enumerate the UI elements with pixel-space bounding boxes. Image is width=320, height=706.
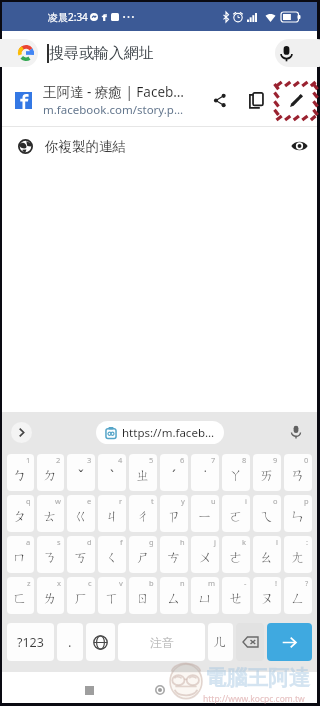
button[interactable]: Recents bbox=[76, 677, 102, 703]
staticText: ㄅ bbox=[13, 467, 28, 485]
button[interactable]: z bbox=[7, 577, 34, 614]
button[interactable]: v bbox=[98, 577, 126, 614]
staticText: ㄘ bbox=[167, 549, 182, 567]
button[interactable]: k bbox=[222, 536, 250, 573]
staticText: q bbox=[26, 496, 31, 506]
button[interactable]: Edit bbox=[275, 75, 317, 126]
button[interactable]: More suggestions bbox=[11, 422, 32, 443]
staticText: 3 bbox=[87, 455, 92, 465]
button[interactable]: https://m.faceb… bbox=[96, 421, 224, 444]
staticText: 9 bbox=[273, 455, 278, 465]
button[interactable]: q bbox=[7, 495, 34, 532]
button[interactable]: g bbox=[129, 536, 157, 573]
staticText: 7 bbox=[211, 455, 216, 465]
staticText: r bbox=[119, 496, 123, 506]
button[interactable]: h bbox=[160, 536, 188, 573]
button[interactable]: n bbox=[160, 577, 188, 614]
button[interactable]: p bbox=[284, 495, 312, 532]
staticText: 5 bbox=[149, 455, 154, 465]
staticText: 0 bbox=[304, 455, 309, 465]
button[interactable]: s bbox=[37, 536, 64, 573]
button[interactable]: j bbox=[191, 536, 219, 573]
staticText: ㄊ bbox=[43, 508, 58, 526]
staticText: https://m.faceb… bbox=[122, 425, 215, 441]
button[interactable]: : bbox=[284, 536, 312, 573]
staticText: e bbox=[87, 496, 92, 506]
staticText: ˋ bbox=[110, 466, 114, 485]
staticText: ㄈ bbox=[13, 590, 28, 608]
button[interactable]: f bbox=[98, 536, 126, 573]
button[interactable]: 8 bbox=[222, 454, 250, 491]
button[interactable]: i bbox=[222, 495, 250, 532]
staticText: a bbox=[26, 537, 31, 547]
staticText: http://www.kocpc.com.tw bbox=[203, 693, 305, 705]
staticText: ˊ bbox=[172, 466, 176, 485]
staticText: s bbox=[57, 537, 61, 547]
button[interactable]: w bbox=[37, 495, 64, 532]
button[interactable]: t bbox=[129, 495, 157, 532]
button[interactable]: 1 bbox=[7, 454, 34, 491]
button[interactable]: d bbox=[67, 536, 95, 573]
staticText: z bbox=[27, 578, 31, 588]
staticText: ㄛ bbox=[229, 508, 244, 526]
button[interactable]: ! bbox=[253, 577, 281, 614]
staticText: b bbox=[149, 578, 154, 588]
button[interactable]: o bbox=[253, 495, 281, 532]
staticText: ㄆ bbox=[13, 508, 28, 526]
staticText: ㄋ bbox=[43, 549, 58, 567]
button[interactable]: ㄦ bbox=[208, 623, 233, 661]
button[interactable]: Go bbox=[267, 623, 312, 661]
button[interactable]: c bbox=[67, 577, 95, 614]
button[interactable]: ? bbox=[284, 577, 312, 614]
button[interactable]: r bbox=[98, 495, 126, 532]
button[interactable]: 3 bbox=[67, 454, 95, 491]
button[interactable]: a bbox=[7, 536, 34, 573]
button[interactable]: 注音 bbox=[118, 623, 205, 661]
staticText: ㄠ bbox=[260, 549, 275, 567]
button[interactable]: u bbox=[191, 495, 219, 532]
button[interactable]: e bbox=[67, 495, 95, 532]
button[interactable]: 你複製的連結 bbox=[2, 127, 317, 165]
staticText: ㄡ bbox=[260, 590, 275, 608]
button[interactable]: y bbox=[160, 495, 188, 532]
button[interactable]: Copy bbox=[238, 75, 275, 126]
button[interactable]: 2 bbox=[37, 454, 64, 491]
staticText: ㄦ bbox=[213, 633, 228, 651]
staticText: j bbox=[214, 537, 216, 547]
button[interactable]: 9 bbox=[253, 454, 281, 491]
button[interactable]: l bbox=[253, 536, 281, 573]
staticText: ㄌ bbox=[43, 590, 58, 608]
button[interactable]: 5 bbox=[129, 454, 157, 491]
staticText: v bbox=[119, 578, 123, 588]
button[interactable]: . bbox=[57, 623, 83, 661]
button[interactable]: 6 bbox=[160, 454, 188, 491]
staticText: ㄣ bbox=[291, 508, 306, 526]
staticText: ㄕ bbox=[136, 549, 151, 567]
button[interactable]: Voice search bbox=[273, 40, 299, 66]
staticText: d bbox=[87, 537, 92, 547]
button[interactable]: Home bbox=[147, 677, 173, 703]
button[interactable]: m bbox=[191, 577, 219, 614]
staticText: m bbox=[208, 578, 216, 588]
button[interactable]: Voice input bbox=[284, 420, 308, 444]
button[interactable]: Change language bbox=[86, 623, 115, 661]
staticText: ㄎ bbox=[74, 549, 89, 567]
button[interactable]: 0 bbox=[284, 454, 312, 491]
button[interactable]: Share bbox=[202, 75, 238, 126]
button[interactable]: 4 bbox=[98, 454, 126, 491]
button[interactable]: Preview bbox=[282, 128, 316, 164]
button[interactable]: Backspace bbox=[236, 623, 264, 661]
staticText: ˇ bbox=[78, 466, 84, 485]
button[interactable]: ?123 bbox=[7, 623, 54, 661]
button[interactable]: 7 bbox=[191, 454, 219, 491]
button[interactable]: 王阿達 - 療癒 | Faceb… bbox=[2, 75, 317, 126]
staticText: 搜尋或輸入網址 bbox=[49, 44, 154, 63]
button[interactable]: x bbox=[37, 577, 64, 614]
staticText: ㄧ bbox=[198, 508, 213, 526]
staticText: 注音 bbox=[150, 635, 174, 650]
button[interactable]: - bbox=[222, 577, 250, 614]
button[interactable]: b bbox=[129, 577, 157, 614]
staticText: 1 bbox=[26, 455, 31, 465]
staticText: ㄢ bbox=[291, 467, 306, 485]
staticText: ㄝ bbox=[229, 590, 244, 608]
